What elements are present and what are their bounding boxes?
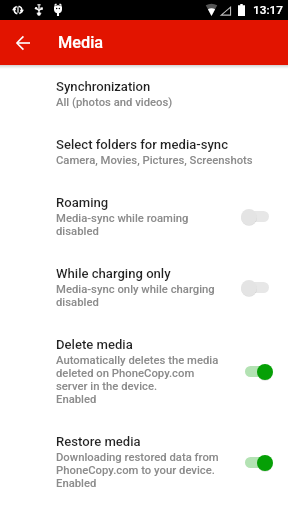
button[interactable]: Restore media (0, 420, 288, 504)
staticText: While charging only (56, 266, 171, 281)
button[interactable]: Synchronization (0, 65, 288, 123)
staticText: Media (58, 33, 104, 52)
staticText: Select folders for media-sync (56, 137, 228, 152)
button[interactable]: Toggle off (241, 279, 273, 296)
staticText: Synchronization (56, 79, 151, 94)
staticText: Media-sync only while charging disabled (56, 283, 215, 309)
button[interactable]: Roaming (0, 181, 288, 252)
staticText: Delete media (56, 337, 133, 352)
staticText: 13:17 (253, 3, 283, 17)
staticText: Restore media (56, 434, 141, 449)
button[interactable]: Delete media (0, 323, 288, 420)
button[interactable]: Select folders for media-sync (0, 123, 288, 181)
staticText: All (photos and videos) (56, 96, 173, 109)
staticText: Camera, Movies, Pictures, Screenshots (56, 154, 253, 167)
button[interactable]: Toggle off (241, 208, 273, 225)
button[interactable]: Toggle on (241, 454, 273, 471)
staticText: Automatically deletes the media deleted … (56, 354, 219, 406)
button[interactable]: Toggle on (241, 363, 273, 380)
button[interactable]: While charging only (0, 252, 288, 323)
button[interactable]: Back (8, 28, 37, 57)
staticText: Media-sync while roaming disabled (56, 212, 189, 238)
staticText: Roaming (56, 195, 109, 210)
staticText: Downloading restored data from PhoneCopy… (56, 451, 219, 490)
